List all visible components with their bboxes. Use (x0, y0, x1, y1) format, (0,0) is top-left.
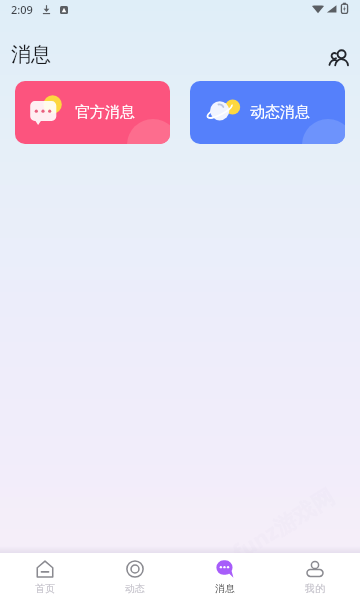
button[interactable]: 动态消息 (190, 81, 345, 144)
staticText: 2:09 (11, 2, 33, 17)
staticText: 消息 (11, 42, 51, 67)
button[interactable]: 官方消息 (15, 81, 170, 144)
button[interactable]: Contacts (324, 43, 354, 73)
button[interactable]: 我的 (270, 553, 360, 600)
staticText: 动态消息 (250, 103, 310, 122)
button[interactable]: 首页 (0, 553, 90, 600)
staticText: 官方消息 (75, 103, 135, 122)
button[interactable]: 动态 (90, 553, 180, 600)
staticText: 首页 (35, 582, 55, 595)
staticText: mfunz游戏网 (208, 480, 340, 578)
button[interactable]: 消息 (180, 553, 270, 600)
staticText: 消息 (215, 582, 235, 595)
staticText: 动态 (125, 582, 145, 595)
staticText: 我的 (305, 582, 325, 595)
